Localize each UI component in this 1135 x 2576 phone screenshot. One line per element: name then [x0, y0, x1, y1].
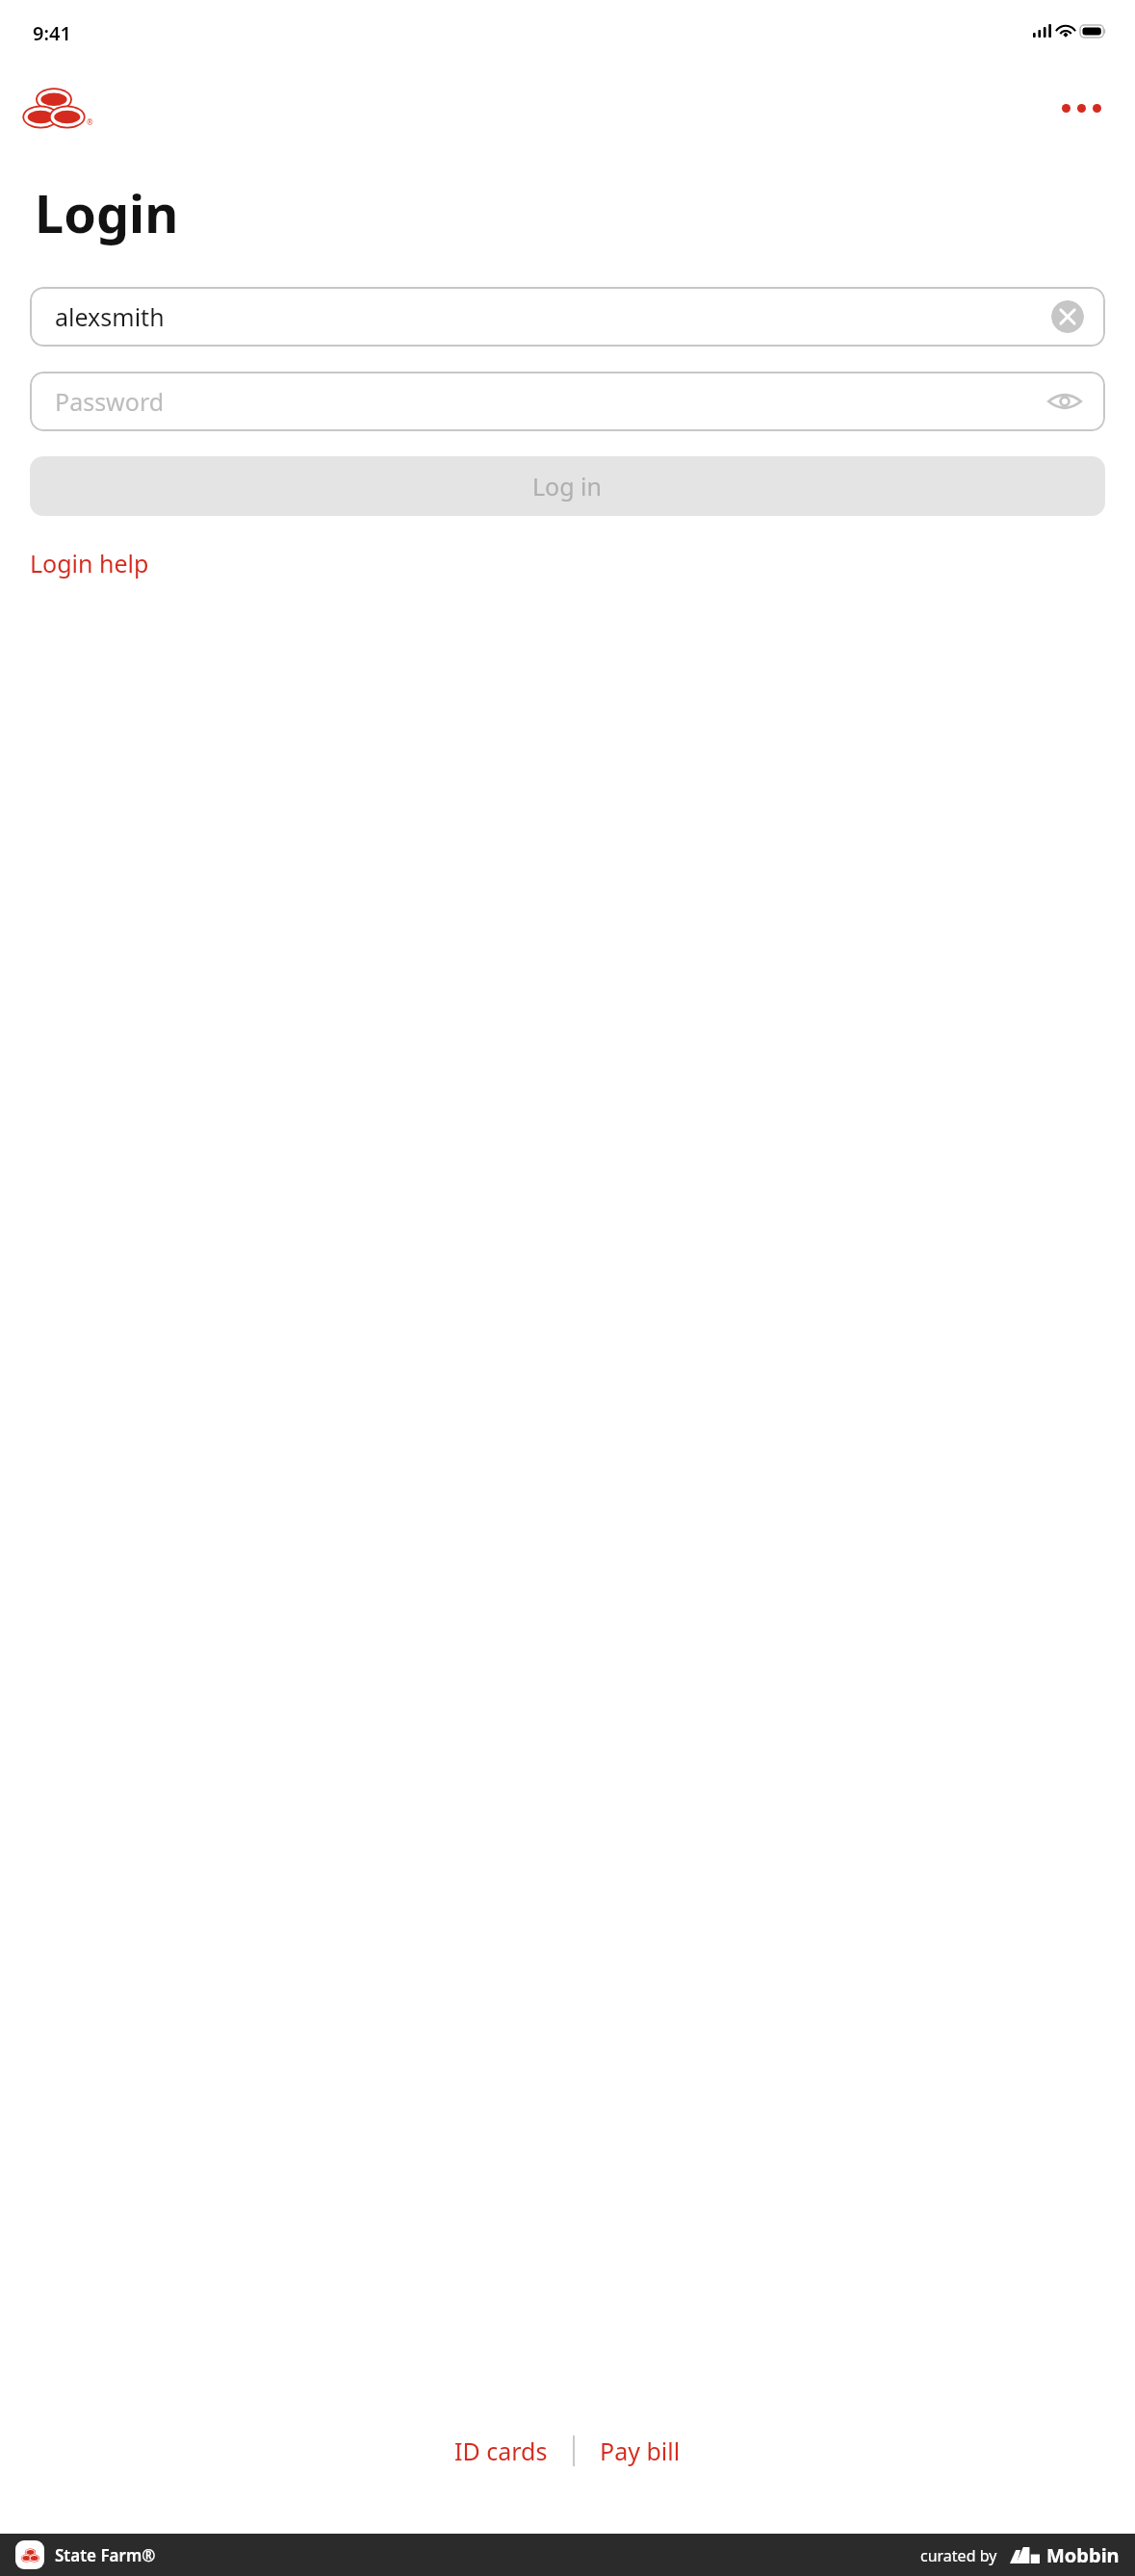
staticText: Pay bill	[600, 2434, 681, 2467]
staticText: Password	[55, 385, 165, 418]
staticText: alexsmith	[55, 300, 165, 333]
button[interactable]: State Farm home	[23, 87, 93, 130]
staticText: 9:41	[33, 20, 71, 46]
staticText: Mobbin	[1046, 2542, 1120, 2568]
button[interactable]: More options	[1052, 87, 1110, 129]
button[interactable]: Login help	[30, 543, 149, 583]
button[interactable]: Password	[30, 372, 1105, 431]
staticText: Log in	[532, 470, 603, 502]
button[interactable]: Pay bill	[575, 2427, 706, 2475]
staticText: ®	[87, 116, 93, 127]
staticText: Login	[35, 177, 179, 248]
button[interactable]: Clear username	[1051, 300, 1084, 333]
button[interactable]: alexsmith	[30, 287, 1105, 347]
staticText: curated by	[920, 2545, 997, 2566]
staticText: State Farm®	[55, 2544, 156, 2566]
button[interactable]: ID cards	[429, 2427, 573, 2475]
staticText: Login help	[30, 547, 149, 580]
staticText: ID cards	[454, 2434, 548, 2467]
button[interactable]: Show password	[1045, 382, 1084, 421]
button[interactable]: Log in	[30, 456, 1105, 516]
